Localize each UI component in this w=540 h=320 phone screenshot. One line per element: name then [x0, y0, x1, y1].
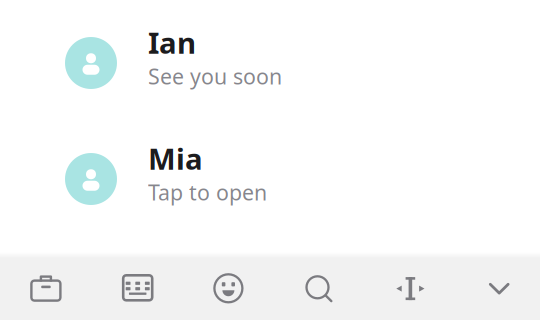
staticText: See you soon: [148, 62, 282, 90]
button[interactable]: Apps: [0, 254, 90, 320]
button[interactable]: Search: [270, 254, 360, 320]
button[interactable]: Keyboard: [90, 254, 180, 320]
button[interactable]: Emoji: [180, 254, 270, 320]
button[interactable]: Ian: [0, 25, 540, 101]
staticText: Tap to open: [148, 178, 267, 206]
button[interactable]: Move cursor: [360, 254, 450, 320]
staticText: Ian: [148, 23, 196, 62]
button[interactable]: Mia: [0, 141, 540, 217]
staticText: Mia: [148, 139, 203, 178]
button[interactable]: Hide keyboard: [450, 254, 540, 320]
